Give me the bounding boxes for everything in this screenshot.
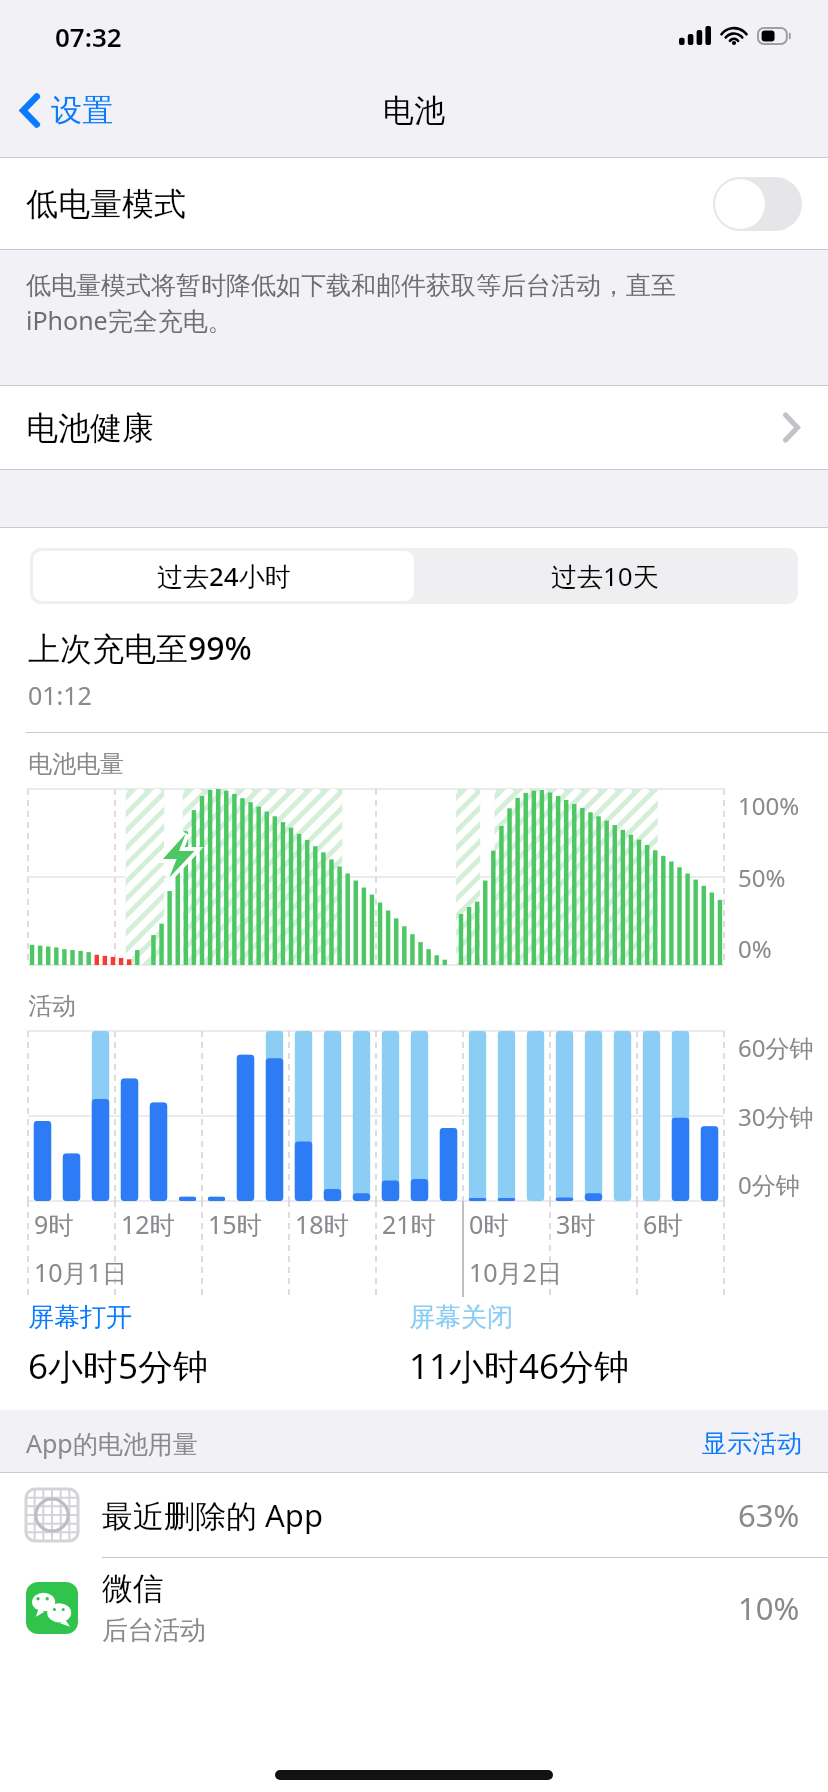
staticText: 设置 bbox=[51, 91, 113, 130]
staticText: 0分钟 bbox=[738, 1168, 800, 1201]
staticText: 18时 bbox=[295, 1207, 349, 1241]
staticText: 10% bbox=[738, 1587, 800, 1629]
staticText: 电池电量 bbox=[28, 749, 124, 779]
staticText: 上次充电至99% bbox=[28, 626, 252, 670]
staticText: 低电量模式 bbox=[26, 184, 186, 224]
button[interactable]: 低电量模式 bbox=[0, 158, 828, 249]
staticText: 屏幕关闭 bbox=[409, 1301, 513, 1334]
staticText: 10月1日 bbox=[34, 1255, 127, 1289]
staticText: 9时 bbox=[34, 1207, 74, 1241]
staticText: 低电量模式将暂时降低如下载和邮件获取等后台活动，直至 iPhone完全充电。 bbox=[26, 270, 810, 337]
staticText: 100% bbox=[738, 789, 800, 822]
staticText: 12时 bbox=[121, 1207, 175, 1241]
button[interactable]: 电池健康 bbox=[0, 386, 828, 469]
staticText: 01:12 bbox=[28, 678, 92, 712]
staticText: 最近删除的 App bbox=[102, 1494, 323, 1536]
staticText: 6小时5分钟 bbox=[28, 1342, 209, 1390]
staticText: 活动 bbox=[28, 991, 76, 1021]
button[interactable]: 设置 bbox=[0, 79, 129, 142]
staticText: 屏幕打开 bbox=[28, 1301, 132, 1334]
button[interactable]: 微信 bbox=[0, 1558, 828, 1658]
button[interactable]: 过去10天 bbox=[414, 551, 795, 601]
button[interactable]: 屏幕关闭 bbox=[409, 1301, 828, 1390]
other: 低电量模式 开关 bbox=[713, 177, 802, 231]
staticText: 后台活动 bbox=[102, 1614, 206, 1647]
button[interactable]: 显示活动 bbox=[702, 1428, 802, 1459]
staticText: 0时 bbox=[469, 1207, 509, 1241]
staticText: 63% bbox=[738, 1494, 800, 1536]
staticText: 过去24小时 bbox=[157, 558, 291, 594]
staticText: 3时 bbox=[556, 1207, 596, 1241]
staticText: App的电池用量 bbox=[26, 1426, 198, 1460]
staticText: 0% bbox=[738, 932, 772, 965]
staticText: 30分钟 bbox=[738, 1100, 814, 1133]
staticText: 10月2日 bbox=[469, 1255, 562, 1289]
staticText: 电池 bbox=[383, 91, 445, 130]
staticText: 6时 bbox=[643, 1207, 683, 1241]
staticText: 电池健康 bbox=[26, 408, 154, 448]
staticText: 过去10天 bbox=[551, 558, 659, 594]
button[interactable]: 屏幕打开 bbox=[28, 1301, 409, 1390]
button[interactable]: 最近删除的 App bbox=[0, 1473, 828, 1557]
button[interactable]: 过去24小时 bbox=[33, 551, 414, 601]
staticText: 60分钟 bbox=[738, 1031, 814, 1064]
staticText: 21时 bbox=[382, 1207, 436, 1241]
staticText: 11小时46分钟 bbox=[409, 1342, 630, 1390]
staticText: 50% bbox=[738, 861, 786, 894]
staticText: 15时 bbox=[208, 1207, 262, 1241]
staticText: 微信 bbox=[102, 1569, 164, 1608]
staticText: 07:32 bbox=[55, 19, 122, 54]
